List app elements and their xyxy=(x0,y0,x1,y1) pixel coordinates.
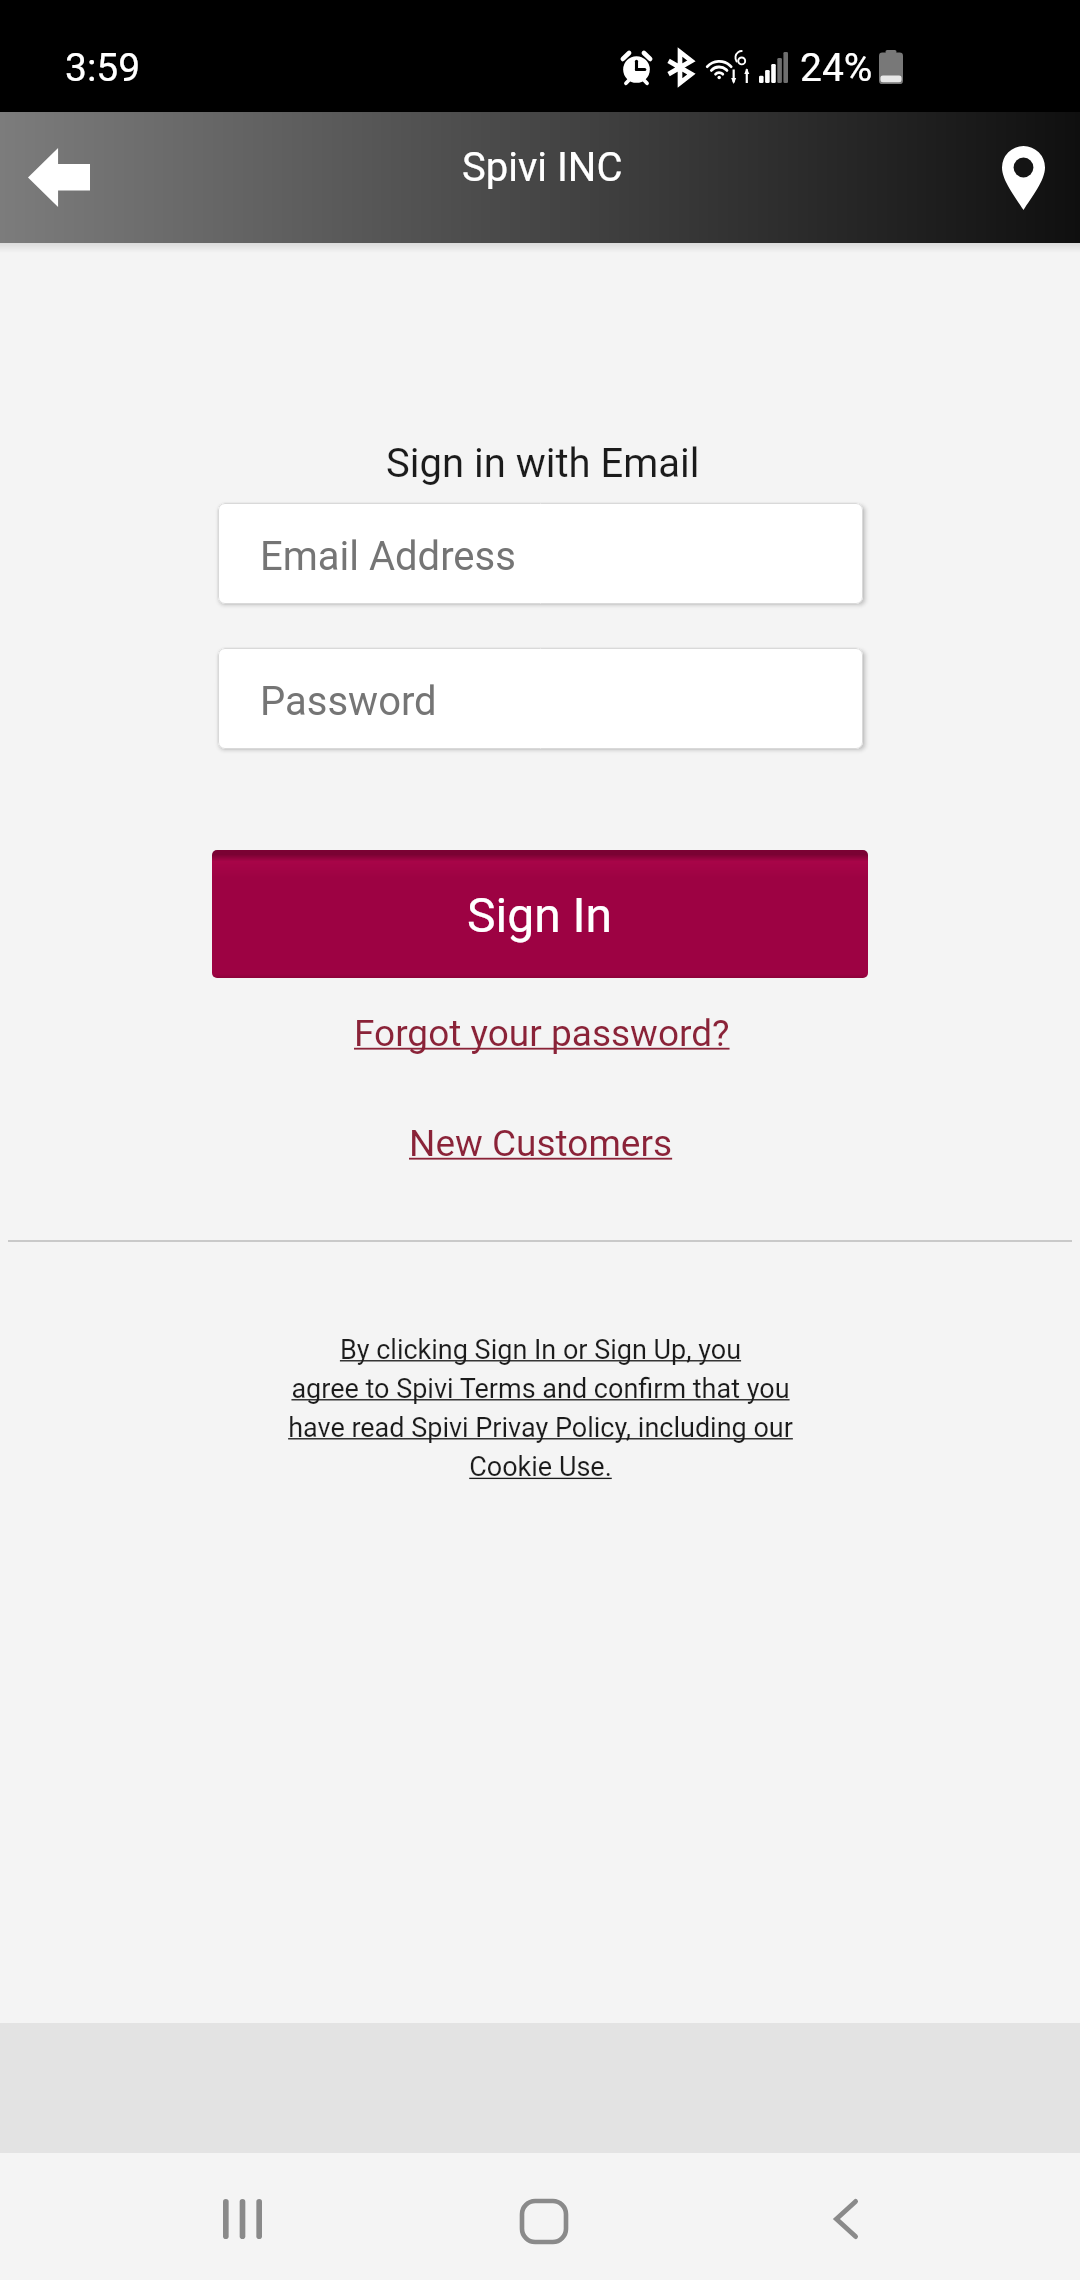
button[interactable]: Recents xyxy=(182,2159,302,2279)
button[interactable]: Password xyxy=(218,648,863,749)
button[interactable]: New Customers xyxy=(399,1116,683,1171)
staticText: 3:59 xyxy=(65,45,141,91)
button[interactable]: Back xyxy=(786,2159,906,2279)
staticText: 24% xyxy=(800,45,873,91)
staticText: Spivi INC xyxy=(462,144,623,191)
button[interactable]: By clicking Sign In or Sign Up, you agre… xyxy=(0,1334,1080,1483)
staticText: Email Address xyxy=(260,533,516,580)
staticText: By clicking Sign In or Sign Up, you agre… xyxy=(288,1334,793,1483)
button[interactable]: Back xyxy=(0,112,118,243)
staticText: Sign In xyxy=(467,887,613,943)
staticText: Sign in with Email xyxy=(386,440,700,487)
button[interactable]: Forgot your password? xyxy=(344,1006,740,1061)
staticText: New Customers xyxy=(409,1122,673,1165)
button[interactable]: Location xyxy=(967,112,1080,243)
button[interactable]: Home xyxy=(484,2161,604,2280)
staticText: Forgot your password? xyxy=(354,1012,730,1055)
button[interactable]: Sign In xyxy=(212,850,868,978)
button[interactable]: Email Address xyxy=(218,503,863,604)
staticText: Password xyxy=(260,678,437,725)
